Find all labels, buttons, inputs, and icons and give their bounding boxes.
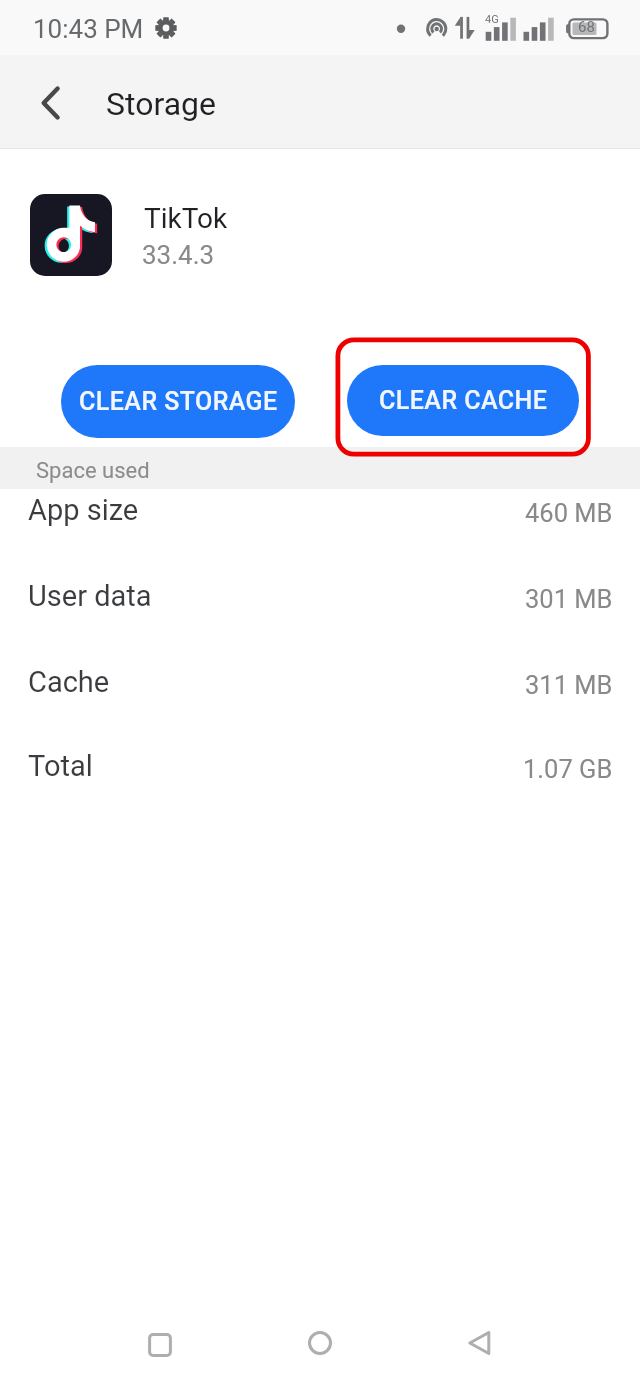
- button[interactable]: Home: [280, 1290, 360, 1386]
- staticText: User data: [28, 579, 152, 613]
- button[interactable]: CLEAR STORAGE: [61, 365, 295, 438]
- staticText: 68: [578, 18, 595, 36]
- staticText: Space used: [36, 458, 150, 484]
- staticText: App size: [28, 493, 139, 527]
- staticText: 460 MB: [525, 498, 613, 528]
- button[interactable]: User data: [0, 554, 640, 637]
- staticText: Storage: [106, 85, 216, 123]
- staticText: 311 MB: [525, 670, 613, 700]
- button[interactable]: App size: [0, 468, 640, 551]
- staticText: 4G: [485, 13, 499, 26]
- button[interactable]: Back: [440, 1290, 520, 1386]
- button[interactable]: Cache: [0, 640, 640, 723]
- button[interactable]: Recents: [120, 1290, 200, 1386]
- button[interactable]: Back: [18, 67, 86, 135]
- button[interactable]: Total: [0, 724, 640, 807]
- staticText: 301 MB: [525, 584, 613, 614]
- staticText: CLEAR STORAGE: [79, 387, 278, 416]
- staticText: Total: [28, 749, 93, 783]
- staticText: 1.07 GB: [523, 754, 613, 784]
- staticText: Cache: [28, 665, 110, 699]
- staticText: 10:43 PM: [33, 14, 144, 44]
- staticText: 33.4.3: [142, 240, 215, 270]
- staticText: CLEAR CACHE: [379, 386, 548, 415]
- staticText: TikTok: [144, 202, 228, 235]
- button[interactable]: CLEAR CACHE: [347, 365, 579, 436]
